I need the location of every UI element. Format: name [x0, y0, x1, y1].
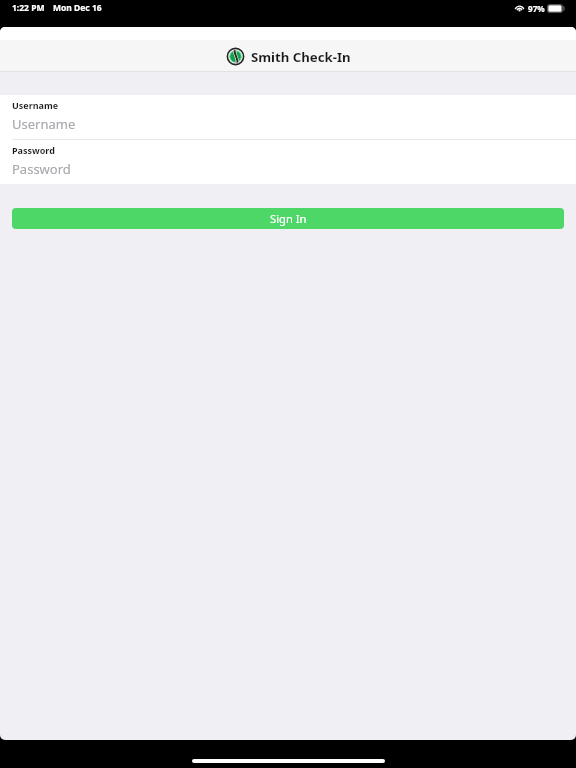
button[interactable]: Username — [0, 95, 576, 139]
staticText: Username — [12, 99, 59, 111]
button[interactable]: Password — [0, 140, 576, 184]
other: Wi-Fi — [515, 4, 524, 12]
button[interactable]: Sign In — [12, 208, 564, 229]
staticText: Password — [12, 160, 71, 178]
staticText: Password — [12, 144, 55, 156]
staticText: Mon Dec 16 — [53, 2, 102, 14]
staticText: Username — [12, 115, 76, 133]
staticText: 1:22 PM — [12, 2, 45, 14]
staticText: Smith Check-In — [251, 48, 351, 66]
staticText: 97% — [528, 3, 545, 14]
other: Battery — [547, 4, 565, 13]
staticText: Sign In — [270, 211, 307, 226]
